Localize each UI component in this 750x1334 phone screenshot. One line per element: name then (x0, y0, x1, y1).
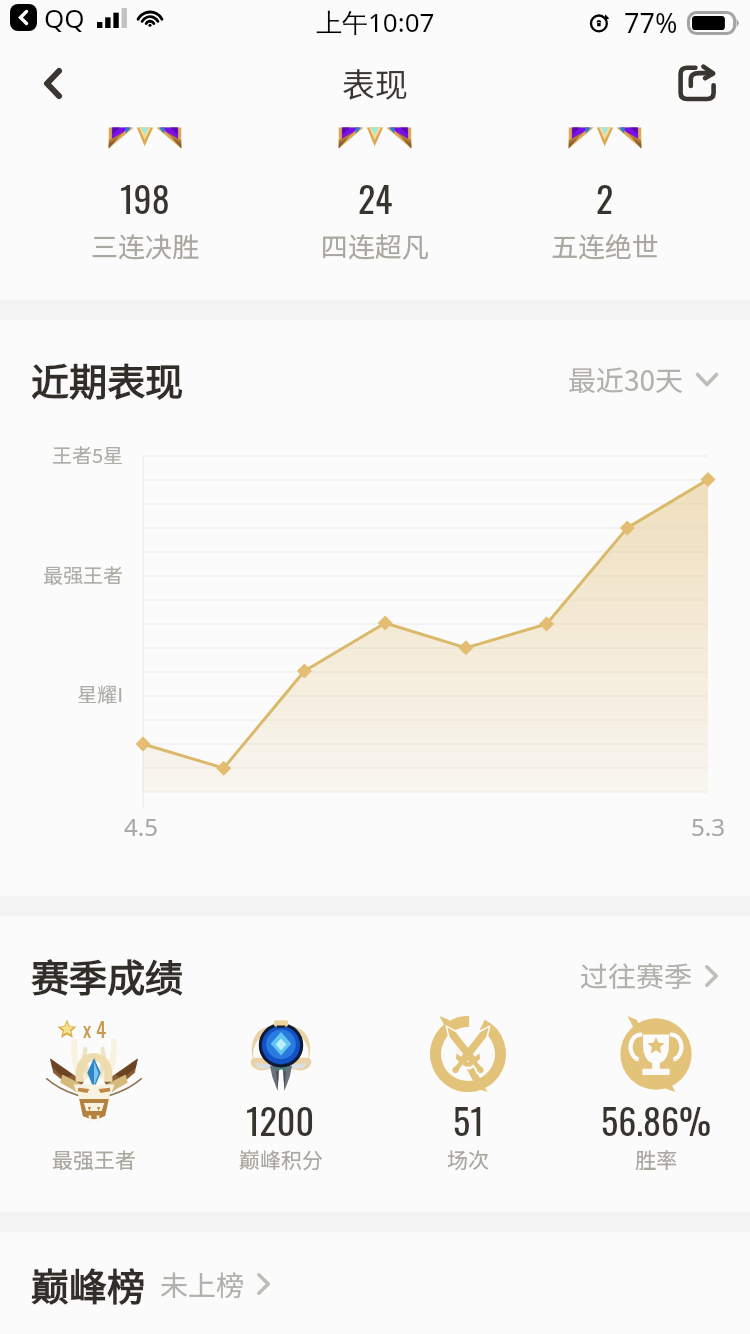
staticText: 五连绝世 (551, 226, 659, 265)
staticText: 24 (358, 171, 393, 224)
staticText: 最强王者 (52, 1144, 136, 1174)
staticText: 表现 (342, 59, 408, 107)
staticText: 巅峰积分 (239, 1144, 323, 1174)
staticText: 巅峰榜 (31, 1257, 146, 1312)
staticText: 上午10:07 (316, 4, 435, 40)
staticText: 2 (596, 171, 614, 224)
staticText: 星耀I (0, 679, 123, 708)
button[interactable]: 巅峰榜 (0, 1237, 750, 1331)
staticText: 56.86% (601, 1093, 712, 1146)
staticText: 最强王者 (0, 560, 123, 589)
staticText: x 4 (83, 1013, 107, 1044)
staticText: 51 (453, 1093, 484, 1146)
button[interactable]: 过往赛季 (580, 955, 718, 996)
staticText: 近期表现 (31, 352, 184, 407)
staticText: 过往赛季 (580, 955, 693, 996)
staticText: 5.3 (688, 810, 728, 843)
button[interactable]: Share (669, 55, 725, 111)
staticText: 4.5 (121, 810, 161, 843)
staticText: 1200 (246, 1093, 315, 1146)
staticText: 赛季成绩 (31, 948, 184, 1003)
button[interactable]: Back (25, 55, 81, 111)
staticText: 77% (624, 4, 678, 41)
staticText: 三连决胜 (91, 226, 199, 265)
staticText: 四连超凡 (321, 226, 429, 265)
staticText: 胜率 (635, 1144, 677, 1174)
staticText: QQ (44, 0, 85, 35)
staticText: 场次 (447, 1144, 489, 1174)
staticText: 王者5星 (0, 440, 123, 469)
button[interactable]: 最近30天 (568, 359, 718, 400)
staticText: 最近30天 (568, 359, 684, 400)
staticText: 未上榜 (160, 1264, 245, 1305)
staticText: 198 (120, 171, 170, 224)
